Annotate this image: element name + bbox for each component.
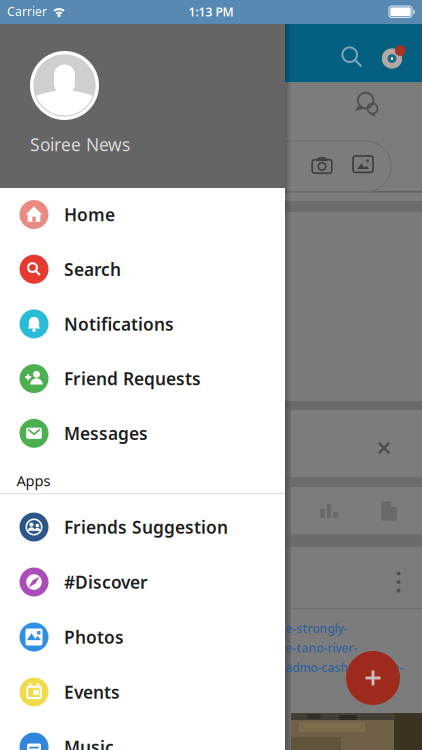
button[interactable]: More options bbox=[396, 571, 400, 592]
staticText: Apps bbox=[16, 471, 50, 490]
button[interactable]: Profile bbox=[30, 51, 190, 166]
button[interactable]: Home bbox=[0, 187, 285, 241]
staticText: admo-cashew-irriga- bbox=[285, 659, 403, 675]
button[interactable]: Events bbox=[0, 665, 285, 719]
button[interactable]: Poll bbox=[320, 504, 338, 518]
staticText: e-strongly- bbox=[285, 620, 347, 636]
staticText: e-tano-river- bbox=[285, 640, 357, 656]
button[interactable]: Profile bbox=[381, 45, 405, 69]
button[interactable]: Search bbox=[341, 46, 362, 67]
button[interactable]: Messages bbox=[0, 406, 285, 460]
button[interactable]: Camera bbox=[311, 157, 332, 174]
staticText: Friends Suggestion bbox=[64, 515, 228, 538]
button[interactable]: Photos bbox=[0, 610, 285, 664]
staticText: Home bbox=[64, 203, 115, 226]
button[interactable]: Notifications bbox=[0, 297, 285, 351]
staticText: Carrier bbox=[7, 3, 47, 19]
staticText: Events bbox=[64, 680, 120, 703]
button[interactable]: Friend Requests bbox=[0, 352, 285, 406]
button[interactable]: New post bbox=[346, 651, 400, 705]
staticText: #Discover bbox=[64, 570, 148, 593]
button[interactable]: Chats bbox=[351, 89, 383, 117]
button[interactable]: Friends Suggestion bbox=[0, 500, 285, 554]
staticText: Music bbox=[64, 735, 114, 750]
button[interactable]: #Discover bbox=[0, 555, 285, 609]
staticText: Notifications bbox=[64, 312, 174, 335]
staticText: Soiree News bbox=[30, 133, 130, 156]
staticText: 1:13 PM bbox=[188, 4, 233, 20]
staticText: Search bbox=[64, 258, 121, 281]
staticText: Photos bbox=[64, 625, 124, 648]
button[interactable]: Attach file bbox=[381, 501, 397, 521]
button[interactable]: Music bbox=[0, 720, 285, 750]
button[interactable]: Photo library bbox=[353, 156, 373, 173]
button[interactable]: Dismiss bbox=[377, 441, 391, 455]
staticText: Messages bbox=[64, 422, 148, 445]
button[interactable]: Link bbox=[285, 620, 422, 676]
button[interactable]: Search bbox=[0, 242, 285, 296]
staticText: Friend Requests bbox=[64, 367, 201, 390]
